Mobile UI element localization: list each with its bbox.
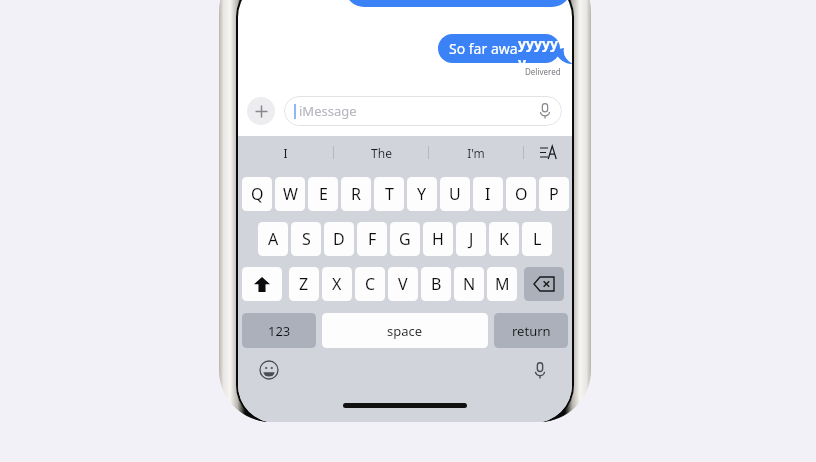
button[interactable]: K — [489, 222, 519, 256]
button[interactable]: B — [421, 267, 451, 301]
staticText: A — [268, 228, 279, 250]
staticText: V — [398, 273, 408, 295]
button[interactable]: E — [308, 177, 338, 211]
staticText: P — [549, 183, 559, 205]
staticText: L — [533, 228, 542, 250]
button[interactable]: Shift — [242, 267, 282, 301]
button[interactable]: Dictation — [528, 358, 552, 382]
button[interactable]: iMessage — [284, 96, 562, 126]
button[interactable]: Z — [289, 267, 319, 301]
button[interactable]: Emoji keyboard — [258, 359, 280, 381]
staticText: E — [319, 183, 328, 205]
staticText: I — [283, 145, 288, 161]
button[interactable]: G — [390, 222, 420, 256]
button[interactable]: N — [454, 267, 484, 301]
button[interactable]: W — [275, 177, 305, 211]
staticText: Y — [417, 183, 427, 205]
button[interactable]: So far awa — [438, 34, 560, 63]
button[interactable]: V — [388, 267, 418, 301]
button[interactable]: Q — [242, 177, 272, 211]
staticText: D — [333, 228, 345, 250]
button[interactable]: return — [494, 313, 568, 348]
button[interactable]: Y — [407, 177, 437, 211]
button[interactable]: 123 — [242, 313, 316, 348]
staticText: F — [368, 228, 377, 250]
button[interactable]: Delete — [524, 267, 564, 301]
button[interactable]: I know! Also, it's not airing until Nove… — [345, 0, 571, 7]
staticText: I'm — [467, 145, 485, 161]
button[interactable]: Record audio message — [537, 103, 553, 119]
button[interactable]: I — [238, 136, 333, 169]
staticText: J — [469, 228, 474, 250]
staticText: The — [371, 145, 392, 161]
button[interactable]: I'm — [429, 136, 523, 169]
button[interactable]: The — [334, 136, 428, 169]
button[interactable]: H — [423, 222, 453, 256]
button[interactable]: C — [355, 267, 385, 301]
staticText: K — [499, 228, 509, 250]
staticText: X — [332, 273, 342, 295]
button[interactable]: S — [291, 222, 321, 256]
button[interactable]: I — [473, 177, 503, 211]
staticText: space — [387, 322, 423, 340]
button[interactable]: L — [522, 222, 552, 256]
button[interactable]: F — [357, 222, 387, 256]
button[interactable]: U — [440, 177, 470, 211]
staticText: B — [431, 273, 442, 295]
staticText: U — [449, 183, 461, 205]
staticText: return — [512, 322, 551, 340]
staticText: 123 — [268, 322, 291, 340]
staticText: I — [485, 183, 491, 205]
button[interactable]: A — [258, 222, 288, 256]
staticText: R — [351, 183, 361, 205]
button[interactable]: O — [506, 177, 536, 211]
staticText: M — [495, 273, 510, 295]
button[interactable]: Text formatting — [524, 136, 572, 169]
button[interactable]: Add attachment — [247, 97, 275, 125]
staticText: W — [283, 183, 298, 205]
staticText: C — [365, 273, 376, 295]
button[interactable]: J — [456, 222, 486, 256]
staticText: Q — [251, 183, 264, 205]
staticText: iMessage — [299, 102, 357, 120]
staticText: O — [515, 183, 528, 205]
staticText: So far awa — [449, 39, 518, 58]
staticText: S — [302, 228, 311, 250]
button[interactable]: M — [487, 267, 517, 301]
staticText: Delivered — [525, 66, 561, 77]
staticText: H — [432, 228, 444, 250]
staticText: Z — [299, 273, 309, 295]
staticText: T — [385, 183, 394, 205]
staticText: N — [463, 273, 476, 295]
button[interactable]: T — [374, 177, 404, 211]
button[interactable]: D — [324, 222, 354, 256]
button[interactable]: P — [539, 177, 569, 211]
button[interactable]: X — [322, 267, 352, 301]
button[interactable]: space — [322, 313, 488, 348]
button[interactable]: R — [341, 177, 371, 211]
staticText: G — [399, 228, 411, 250]
staticText: yyyyyy — [518, 34, 560, 63]
